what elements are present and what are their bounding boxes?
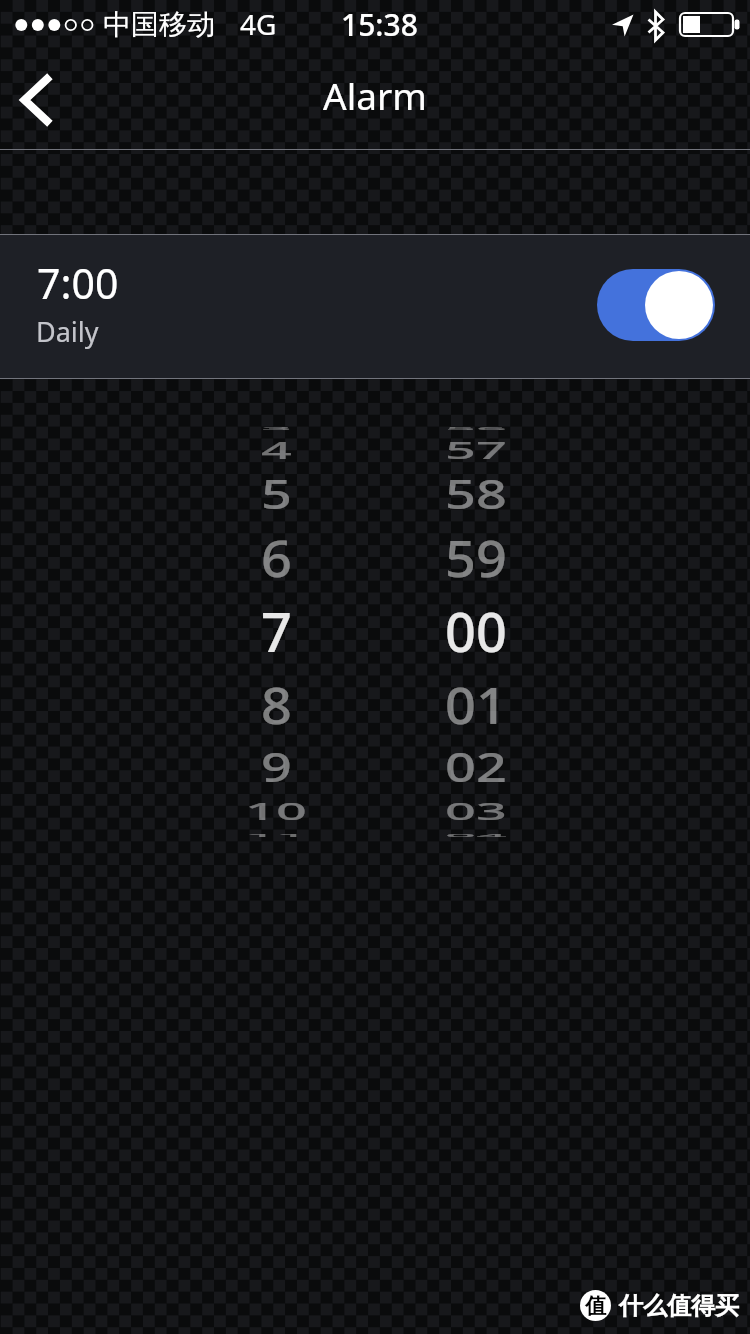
button[interactable]: Minute 00 bbox=[376, 409, 576, 859]
staticText: 56 bbox=[445, 426, 507, 432]
staticText: 57 bbox=[445, 434, 507, 466]
staticText: 59 bbox=[445, 523, 507, 591]
staticText: 10 bbox=[245, 795, 307, 827]
staticText: 01 bbox=[445, 670, 507, 738]
staticText: Alarm bbox=[323, 70, 427, 120]
staticText: 00 bbox=[445, 594, 507, 668]
staticText: 4G bbox=[240, 5, 277, 43]
staticText: 9 bbox=[261, 740, 292, 794]
staticText: 中国移动 bbox=[103, 7, 215, 42]
staticText: 58 bbox=[445, 467, 507, 521]
staticText: 3 bbox=[261, 426, 292, 432]
staticText: Daily bbox=[36, 313, 99, 350]
button[interactable]: 7:00 bbox=[0, 234, 750, 379]
staticText: 02 bbox=[445, 740, 507, 794]
button[interactable]: Hour 7 bbox=[176, 409, 376, 859]
staticText: 15:38 bbox=[341, 4, 418, 45]
staticText: 7:00 bbox=[37, 255, 119, 311]
staticText: 5 bbox=[261, 467, 292, 521]
staticText: 04 bbox=[445, 833, 507, 839]
staticText: 6 bbox=[261, 523, 292, 591]
staticText: 8 bbox=[261, 670, 292, 738]
staticText: 4 bbox=[261, 434, 292, 466]
button[interactable]: Alarm enabled bbox=[597, 269, 715, 341]
button[interactable]: Back bbox=[0, 75, 70, 125]
staticText: 11 bbox=[245, 833, 307, 839]
staticText: 什么值得买 bbox=[619, 1291, 739, 1321]
staticText: 03 bbox=[445, 795, 507, 827]
staticText: 7 bbox=[261, 594, 292, 668]
staticText: 值 bbox=[585, 1293, 606, 1319]
